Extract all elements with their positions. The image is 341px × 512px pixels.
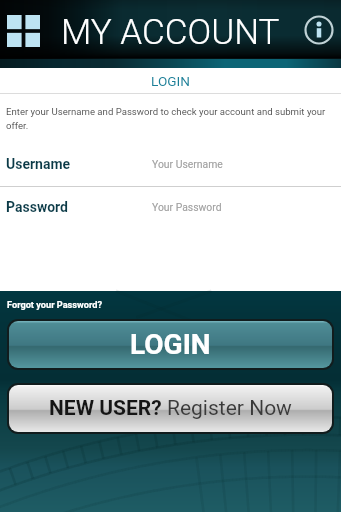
button[interactable]: Forgot your Password? <box>0 299 103 310</box>
staticText: MY ACCOUNT <box>61 12 280 53</box>
staticText: Password <box>6 199 68 215</box>
button[interactable]: LOGIN <box>9 321 332 368</box>
staticText: Enter your Username and Password to chec… <box>6 106 332 131</box>
staticText: Your Password <box>152 201 222 213</box>
button[interactable]: LOGIN <box>133 70 208 92</box>
button[interactable]: Info <box>304 15 334 45</box>
staticText: LOGIN <box>130 328 211 361</box>
staticText: NEW USER? <box>49 396 167 421</box>
button[interactable]: Username <box>0 144 341 186</box>
staticText: Username <box>6 156 71 172</box>
button[interactable]: NEW USER? <box>9 385 332 432</box>
button[interactable]: Menu <box>7 15 40 47</box>
staticText: Your Username <box>152 158 223 170</box>
staticText: LOGIN <box>151 73 190 89</box>
button[interactable]: Password <box>0 187 341 229</box>
staticText: Register Now <box>167 396 292 421</box>
